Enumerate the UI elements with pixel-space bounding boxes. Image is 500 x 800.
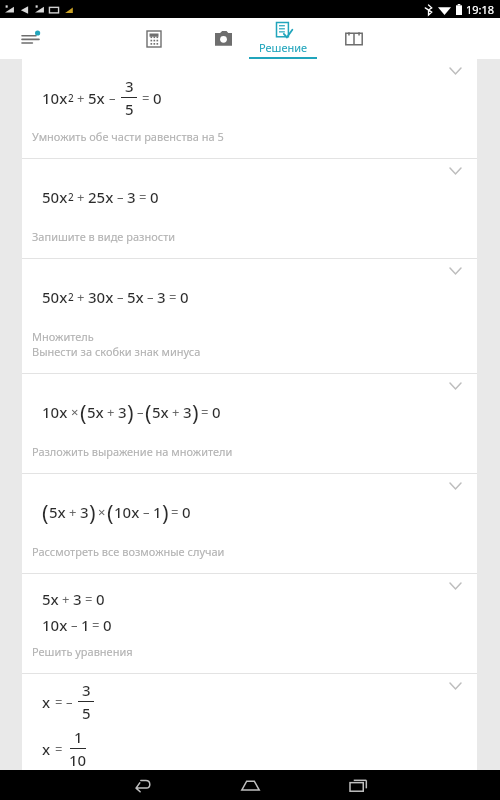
staticText: 0 — [103, 615, 112, 635]
button[interactable]: x — [22, 673, 477, 770]
staticText: 0 — [96, 589, 105, 609]
staticText: + — [172, 403, 180, 421]
button[interactable]: Dictionary — [330, 18, 378, 59]
staticText: 3 — [118, 402, 127, 422]
staticText: ) — [127, 397, 134, 427]
staticText: 10x — [42, 88, 68, 108]
staticText: 3 — [125, 76, 134, 96]
button[interactable]: Решение — [249, 18, 317, 59]
staticText: 3 — [80, 502, 89, 522]
staticText: Разложить выражение на множители — [32, 444, 233, 459]
staticText: – — [137, 403, 144, 421]
staticText: 3 — [157, 287, 166, 307]
staticText: ) — [192, 397, 199, 427]
staticText: 5x — [88, 88, 105, 108]
staticText: = — [85, 590, 93, 608]
staticText: 0 — [182, 502, 191, 522]
staticText: 50x — [42, 287, 68, 307]
staticText: 5x — [87, 402, 104, 422]
staticText: – — [147, 288, 154, 306]
staticText: 0 — [150, 187, 159, 207]
staticText: ( — [107, 497, 114, 527]
staticText: – — [143, 503, 150, 521]
staticText: 3 — [183, 402, 192, 422]
staticText: – — [66, 693, 73, 711]
staticText: ( — [80, 397, 87, 427]
staticText: 2 — [68, 190, 74, 204]
staticText: 10x — [114, 502, 140, 522]
staticText: = — [142, 89, 150, 107]
staticText: x — [42, 739, 51, 759]
staticText: x — [42, 692, 51, 712]
staticText: 2 — [68, 290, 74, 304]
staticText: = — [139, 188, 147, 206]
staticText: + — [77, 288, 85, 306]
staticText: – — [117, 288, 124, 306]
button[interactable]: Camera — [199, 18, 247, 59]
button[interactable]: Recent apps — [330, 770, 386, 800]
staticText: 30x — [88, 287, 114, 307]
staticText: Множитель — [32, 329, 94, 344]
staticText: 25x — [88, 187, 114, 207]
staticText: = — [55, 693, 63, 711]
staticText: = — [55, 740, 63, 758]
button[interactable]: 50x — [22, 258, 477, 373]
staticText: = — [201, 403, 209, 421]
button[interactable]: 5x — [22, 573, 477, 673]
staticText: – — [109, 89, 116, 107]
staticText: × — [71, 403, 79, 421]
staticText: 0 — [180, 287, 189, 307]
staticText: + — [62, 590, 70, 608]
staticText: 50x — [42, 187, 68, 207]
staticText: + — [107, 403, 115, 421]
staticText: = — [171, 503, 179, 521]
staticText: ( — [42, 497, 49, 527]
staticText: + — [69, 503, 77, 521]
staticText: Решение — [259, 40, 308, 55]
button[interactable]: 10x — [22, 373, 477, 473]
staticText: ) — [162, 497, 169, 527]
staticText: Решить уравнения — [32, 644, 133, 659]
staticText: 1 — [153, 502, 162, 522]
staticText: 10x — [42, 615, 68, 635]
button[interactable]: Home — [222, 770, 278, 800]
staticText: 1 — [81, 615, 90, 635]
staticText: Вынести за скобки знак минуса — [32, 344, 201, 359]
button[interactable]: Menu — [8, 18, 52, 59]
staticText: 5 — [82, 703, 91, 723]
staticText: 3 — [127, 187, 136, 207]
staticText: = — [92, 616, 100, 634]
staticText: 3 — [82, 680, 91, 700]
button[interactable]: Back — [114, 770, 170, 800]
staticText: 3 — [73, 589, 82, 609]
button[interactable]: 10x — [22, 59, 477, 158]
staticText: 0 — [212, 402, 221, 422]
staticText: + — [77, 188, 85, 206]
staticText: 19:18 — [466, 2, 495, 17]
staticText: Запишите в виде разности — [32, 229, 176, 244]
staticText: 5x — [152, 402, 169, 422]
staticText: 5 — [125, 99, 134, 119]
staticText: 0 — [153, 88, 162, 108]
staticText: 10 — [69, 750, 87, 770]
button[interactable]: 50x — [22, 158, 477, 258]
staticText: 5x — [49, 502, 66, 522]
staticText: 5x — [42, 589, 59, 609]
staticText: 5x — [127, 287, 144, 307]
staticText: – — [117, 188, 124, 206]
staticText: Умножить обе части равенства на 5 — [32, 129, 224, 144]
staticText: ) — [89, 497, 96, 527]
staticText: – — [71, 616, 78, 634]
staticText: × — [98, 503, 106, 521]
staticText: Рассмотреть все возможные случаи — [32, 544, 225, 559]
staticText: + — [77, 89, 85, 107]
staticText: ( — [145, 397, 152, 427]
staticText: 1 — [74, 727, 83, 747]
button[interactable]: ( — [22, 473, 477, 573]
staticText: = — [169, 288, 177, 306]
staticText: 10x — [42, 402, 68, 422]
staticText: 2 — [68, 91, 74, 105]
button[interactable]: Calculator — [130, 18, 178, 59]
